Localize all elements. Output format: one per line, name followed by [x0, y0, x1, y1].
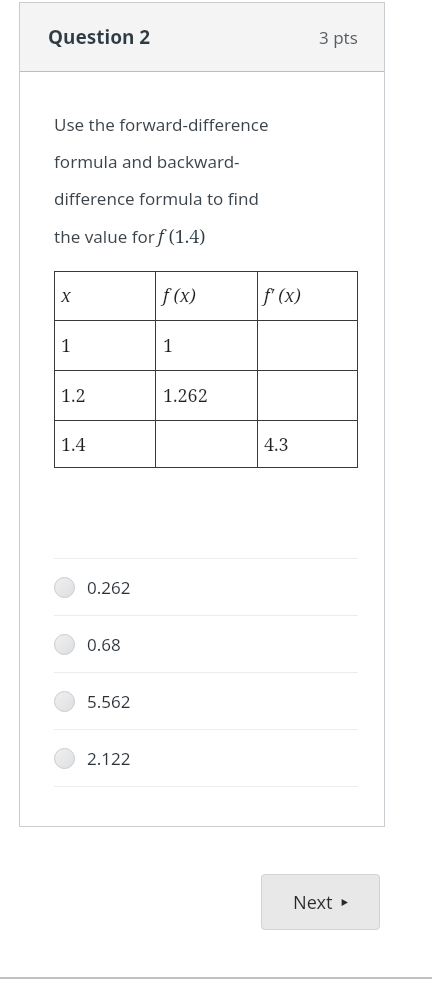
staticText: 3 pts	[319, 26, 358, 49]
staticText: 1.2	[61, 383, 86, 408]
button[interactable]: 2.122	[54, 730, 358, 786]
staticText: 1	[61, 333, 72, 358]
staticText: 0.262	[87, 576, 131, 599]
button[interactable]: 5.562	[54, 673, 358, 729]
staticText: x	[61, 283, 71, 308]
staticText: 4.3	[264, 432, 289, 457]
staticText: 1.262	[163, 383, 208, 408]
staticText: 0.68	[87, 633, 121, 656]
staticText: 2.122	[87, 747, 131, 770]
staticText: the value for	[54, 225, 155, 248]
staticText: f (x)	[163, 283, 196, 308]
staticText: Question 2	[48, 24, 151, 50]
staticText: 5.562	[87, 690, 131, 713]
button[interactable]: Next	[261, 874, 380, 930]
staticText: 1.4	[61, 432, 86, 457]
staticText: f′ (x)	[264, 283, 301, 308]
staticText: difference formula to find	[54, 187, 260, 210]
staticText: Use the forward-difference	[54, 113, 269, 136]
staticText: Next	[293, 890, 333, 915]
staticText: formula and backward-	[54, 150, 240, 173]
staticText: 1	[163, 333, 174, 358]
button[interactable]: 0.262	[54, 559, 358, 615]
button[interactable]: 0.68	[54, 616, 358, 672]
staticText: f (1.4)	[158, 224, 206, 249]
